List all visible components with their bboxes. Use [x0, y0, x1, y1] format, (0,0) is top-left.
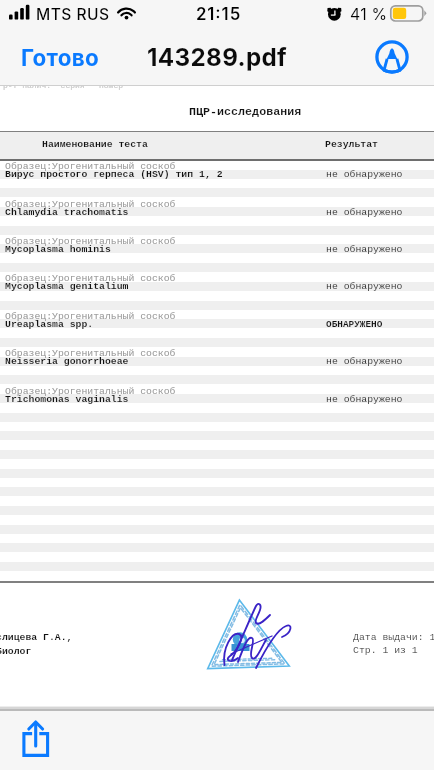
button[interactable]: Образец:Урогенитальный соскоб: [0, 198, 434, 235]
staticText: р-т налич. серия номер: [3, 81, 124, 90]
button[interactable]: Share: [14, 716, 58, 760]
staticText: Образец:Урогенитальный соскоб: [5, 311, 176, 322]
staticText: ОБНАРУЖЕНО: [326, 319, 383, 330]
staticText: Образец:Урогенитальный соскоб: [5, 161, 176, 172]
button[interactable]: Образец:Урогенитальный соскоб: [0, 235, 434, 272]
button[interactable]: Готово: [21, 44, 100, 71]
staticText: Вирус простого герпеса (HSV) тип 1, 2: [5, 169, 223, 180]
staticText: не обнаружено: [326, 281, 403, 292]
staticText: 41 %: [350, 5, 388, 24]
button[interactable]: Образец:Урогенитальный соскоб: [0, 385, 434, 422]
staticText: Образец:Урогенитальный соскоб: [5, 236, 176, 247]
staticText: Образец:Урогенитальный соскоб: [5, 348, 176, 359]
staticText: Mycoplasma hominis: [5, 244, 111, 255]
button[interactable]: Образец:Урогенитальный соскоб: [0, 272, 434, 309]
staticText: 21:15: [196, 4, 242, 24]
staticText: не обнаружено: [326, 356, 403, 367]
staticText: не обнаружено: [326, 169, 403, 180]
button[interactable]: Образец:Урогенитальный соскоб: [0, 310, 434, 347]
staticText: Chlamydia trachomatis: [5, 207, 129, 218]
staticText: Стр. 1 из 1: [353, 645, 418, 656]
button[interactable]: Образец:Урогенитальный соскоб: [0, 160, 434, 197]
button[interactable]: Образец:Урогенитальный соскоб: [0, 347, 434, 384]
staticText: слицева Г.А.,: [0, 632, 73, 643]
staticText: Mycoplasma genitalium: [5, 281, 129, 292]
staticText: Образец:Урогенитальный соскоб: [5, 273, 176, 284]
staticText: Биолог: [0, 646, 32, 657]
staticText: не обнаружено: [326, 207, 403, 218]
staticText: Trichomonas vaginalis: [5, 394, 129, 405]
staticText: Образец:Урогенитальный соскоб: [5, 386, 176, 397]
staticText: Образец:Урогенитальный соскоб: [5, 199, 176, 210]
staticText: не обнаружено: [326, 244, 403, 255]
staticText: 143289.pdf: [147, 43, 288, 72]
staticText: MTS RUS: [36, 5, 110, 24]
staticText: Готово: [21, 44, 100, 71]
staticText: Результат: [325, 139, 378, 150]
staticText: Neisseria gonorrhoeae: [5, 356, 129, 367]
staticText: Ureaplasma spp.: [5, 319, 94, 330]
staticText: Наименование теста: [42, 139, 148, 150]
button[interactable]: Markup: [373, 38, 411, 76]
staticText: не обнаружено: [326, 394, 403, 405]
staticText: ПЦР-исследования: [189, 105, 302, 118]
staticText: Дата выдачи: 1: [353, 632, 434, 643]
